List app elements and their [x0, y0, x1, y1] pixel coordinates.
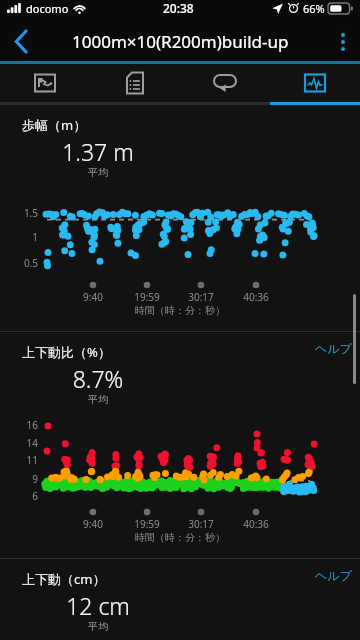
staticText: 1000m×10(R200m)build-up [72, 30, 289, 53]
button[interactable]: Laps [180, 64, 270, 102]
staticText: 8.7% [28, 363, 168, 394]
button[interactable]: ヘルプ [315, 568, 352, 583]
staticText: 時間（時：分：秒） [135, 531, 225, 544]
staticText: 16 [0, 418, 38, 432]
staticText: docomo [26, 1, 69, 16]
button[interactable]: Charts [270, 64, 360, 102]
staticText: 40:36 [226, 290, 286, 304]
staticText: 9:40 [63, 517, 123, 531]
staticText: 9:40 [63, 290, 123, 304]
staticText: 上下動比（%） [22, 343, 111, 361]
staticText: 19:59 [117, 517, 177, 531]
staticText: 20:38 [163, 0, 194, 16]
button[interactable]: Map [0, 64, 90, 102]
button[interactable]: More options [326, 22, 360, 61]
staticText: 19:59 [117, 290, 177, 304]
staticText: 上下動（cm） [22, 570, 106, 588]
staticText: 1.5 [0, 206, 38, 220]
staticText: 時間（時：分：秒） [135, 304, 225, 317]
button[interactable]: ヘルプ [315, 341, 352, 356]
staticText: 平均 [28, 393, 168, 406]
staticText: 平均 [28, 166, 168, 179]
staticText: 30:17 [171, 517, 231, 531]
staticText: 6 [0, 489, 38, 503]
staticText: 0.5 [0, 256, 38, 270]
staticText: 11 [0, 453, 38, 467]
button[interactable]: Details [90, 64, 180, 102]
staticText: 9 [0, 472, 38, 486]
staticText: 30:17 [171, 290, 231, 304]
staticText: 12 cm [28, 590, 168, 621]
staticText: 歩幅（m） [22, 116, 87, 134]
staticText: 平均 [28, 620, 168, 633]
button[interactable]: Back [0, 22, 42, 61]
staticText: 1 [0, 230, 38, 244]
staticText: 1.37 m [28, 136, 168, 167]
staticText: 14 [0, 436, 38, 450]
staticText: 40:36 [226, 517, 286, 531]
staticText: 66% [303, 1, 325, 16]
